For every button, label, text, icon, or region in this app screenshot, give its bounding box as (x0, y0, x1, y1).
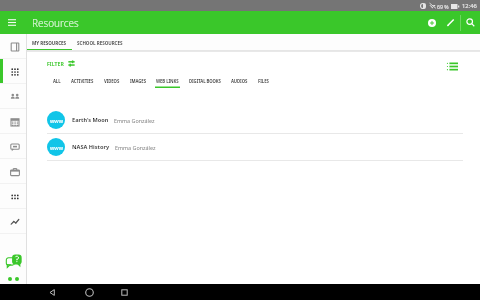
staticText: ACTIVITIES (71, 78, 94, 84)
button[interactable]: Nav item (0, 109, 27, 134)
staticText: FILES (258, 78, 269, 84)
button[interactable]: List view (446, 60, 458, 72)
staticText: 69 % (437, 3, 449, 10)
button[interactable]: WEB LINKS (151, 74, 184, 88)
button[interactable]: Recents (112, 284, 136, 300)
button[interactable]: IMAGES (125, 74, 151, 88)
staticText: Resources (32, 16, 79, 30)
staticText: SCHOOL RESOURCES (77, 40, 123, 46)
staticText: MY RESOURCES (32, 40, 67, 46)
button[interactable]: AUDIOS (226, 74, 253, 88)
staticText: DIGITAL BOOKS (189, 78, 221, 84)
button[interactable]: Nav item (0, 134, 27, 159)
staticText: NASA History (72, 143, 110, 151)
button[interactable]: Nav item (0, 159, 27, 184)
button[interactable]: www (27, 134, 480, 160)
staticText: www (50, 117, 63, 124)
button[interactable]: ALL (48, 74, 66, 88)
button[interactable]: Menu (0, 11, 23, 34)
button[interactable]: ACTIVITIES (66, 74, 99, 88)
button[interactable]: Add (423, 11, 441, 34)
button[interactable]: VIDEOS (99, 74, 125, 88)
button[interactable]: FILTER (47, 60, 75, 67)
staticText: VIDEOS (104, 78, 120, 84)
staticText: Emma González (115, 144, 156, 151)
button[interactable]: Nav item (0, 34, 27, 59)
button[interactable]: Edit (441, 11, 460, 34)
button[interactable]: Help (6, 252, 22, 268)
staticText: IMAGES (130, 78, 146, 84)
button[interactable]: Home (77, 284, 101, 300)
button[interactable]: MY RESOURCES (27, 34, 72, 51)
staticText: www (50, 144, 63, 151)
staticText: AUDIOS (231, 78, 248, 84)
button[interactable]: Nav item (0, 184, 27, 209)
staticText: 12:46 (462, 2, 477, 10)
button[interactable]: DIGITAL BOOKS (184, 74, 226, 88)
button[interactable]: SCHOOL RESOURCES (72, 34, 128, 51)
staticText: Emma González (114, 117, 155, 124)
button[interactable]: FILES (253, 74, 274, 88)
button[interactable]: Nav item (0, 84, 27, 109)
staticText: WEB LINKS (156, 78, 179, 84)
button[interactable]: Back (40, 284, 64, 300)
staticText: Earth's Moon (72, 116, 109, 124)
button[interactable]: Nav item (0, 209, 27, 234)
staticText: ALL (53, 78, 61, 84)
button[interactable]: Nav item (0, 59, 27, 84)
button[interactable]: Search (461, 11, 480, 34)
staticText: FILTER (47, 60, 64, 67)
button[interactable]: www (27, 107, 480, 133)
